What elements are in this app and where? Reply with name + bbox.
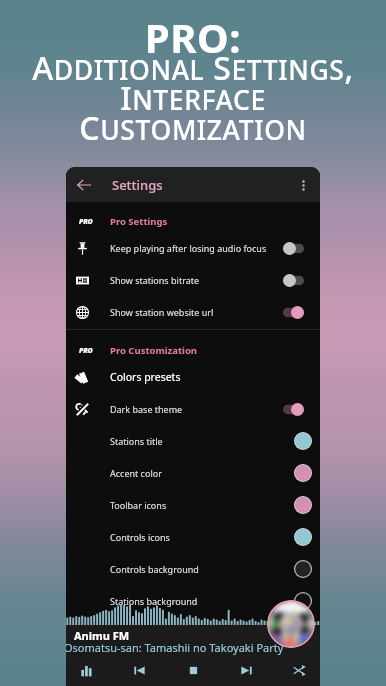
staticText: Toolbar icons xyxy=(110,499,167,511)
button[interactable]: Accent color xyxy=(66,457,320,489)
staticText: Pro Settings xyxy=(110,215,168,228)
staticText: Keep playing after losing audio focus xyxy=(110,242,267,254)
button[interactable]: Stations title xyxy=(66,425,320,457)
button[interactable]: Keep playing after losing audio focus xyxy=(66,232,320,264)
staticText: Controls icons xyxy=(110,531,170,543)
staticText: Dark base theme xyxy=(110,403,183,415)
staticText: Stations title xyxy=(110,435,163,447)
button[interactable]: Back xyxy=(72,173,95,196)
button[interactable]: Album art xyxy=(267,600,315,648)
button[interactable]: Controls icons xyxy=(66,521,320,553)
button[interactable]: Previous xyxy=(128,659,151,682)
staticText: Stations background xyxy=(110,595,198,607)
staticText: ADDITIONAL SETTINGS, INTERFACE CUSTOMIZA… xyxy=(0,46,386,150)
button[interactable]: More options xyxy=(290,172,316,198)
staticText: Pro Customization xyxy=(110,344,198,357)
button[interactable]: Show station website url xyxy=(66,296,320,328)
button[interactable]: Colors presets xyxy=(66,361,320,393)
staticText: Osomatsu-san: Tamashii no Takoyaki Party xyxy=(66,640,284,655)
button[interactable]: Toolbar icons xyxy=(66,489,320,521)
staticText: PRO xyxy=(79,217,93,227)
button[interactable]: Show stations bitrate xyxy=(66,264,320,296)
staticText: Accent color xyxy=(110,467,162,479)
staticText: Settings xyxy=(112,176,163,194)
button[interactable]: Dark base theme xyxy=(66,393,320,425)
staticText: PRO: xyxy=(0,10,386,64)
button[interactable]: Equalizer xyxy=(75,659,98,682)
staticText: Colors presets xyxy=(110,370,181,384)
button[interactable]: Shuffle xyxy=(288,659,311,682)
button[interactable]: Next xyxy=(235,659,258,682)
button[interactable]: Controls background xyxy=(66,553,320,585)
button[interactable]: Stop xyxy=(182,659,205,682)
staticText: Show stations bitrate xyxy=(110,274,200,286)
staticText: Controls background xyxy=(110,563,199,575)
button[interactable]: Stations background xyxy=(66,585,320,617)
staticText: PRO xyxy=(79,346,93,356)
staticText: Animu FM xyxy=(74,628,130,643)
staticText: Show station website url xyxy=(110,306,214,318)
